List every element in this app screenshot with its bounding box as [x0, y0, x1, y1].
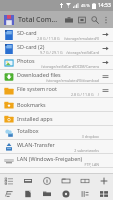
staticText: /storage/extSdCard: [66, 50, 99, 55]
button[interactable]: Add: [94, 174, 113, 187]
button[interactable]: SD-card: [0, 28, 113, 42]
staticText: 9.7 G / 29.1 G: [40, 50, 63, 55]
button[interactable]: Installed apps: [0, 112, 113, 126]
staticText: SD-card: [17, 29, 37, 36]
button[interactable]: List view: [0, 174, 18, 187]
staticText: /storage/emulated/0/download: [45, 78, 99, 83]
button[interactable]: Totalbox: [0, 126, 113, 140]
staticText: WLAN-Transfer: [17, 141, 55, 148]
button[interactable]: Sort: [0, 187, 18, 200]
button[interactable]: New folder: [56, 174, 75, 187]
button[interactable]: SD-card (2): [0, 42, 113, 56]
button[interactable]: WLAN-Transfer: [0, 140, 113, 154]
staticText: LAN (Windows-Freigaben): [17, 155, 83, 162]
staticText: /storage/emulated/0: [63, 36, 99, 41]
staticText: /storage/extSdCard/DCIM/Camera: [41, 64, 99, 69]
button[interactable]: Compare: [75, 174, 94, 187]
button[interactable]: Info: [37, 174, 56, 187]
button[interactable]: Photos: [0, 56, 113, 70]
button[interactable]: Tools: [62, 12, 75, 27]
staticText: 2.8 G / 11.8 G: [71, 92, 94, 97]
button[interactable]: App icon: [3, 14, 15, 26]
button[interactable]: Copy file: [18, 187, 37, 200]
staticText: Photos: [17, 57, 35, 64]
button[interactable]: Move: [37, 187, 56, 200]
button[interactable]: Settings: [56, 187, 75, 200]
button[interactable]: Search: [88, 12, 101, 27]
button[interactable]: More options: [101, 12, 110, 27]
staticText: File system root: [17, 85, 57, 92]
staticText: 14:53: [98, 2, 111, 9]
button[interactable]: Split: [94, 187, 113, 200]
staticText: Downloaded files: [17, 71, 61, 78]
button[interactable]: Downloaded files: [0, 70, 113, 84]
staticText: 3 dropbox: [81, 134, 99, 139]
button[interactable]: File system root: [0, 84, 113, 98]
button[interactable]: Bookmarks: [0, 98, 113, 112]
staticText: 2 subnetworks: [74, 148, 99, 153]
staticText: SD-card (2): [17, 43, 45, 50]
staticText: FTP, LAN: [84, 162, 99, 167]
button[interactable]: Rename: [18, 174, 37, 187]
staticText: Totalbox: [17, 127, 39, 134]
staticText: Installed apps: [17, 115, 53, 122]
staticText: Bookmarks: [17, 101, 46, 108]
staticText: 2.8 G / 11.8 G: [37, 36, 60, 41]
staticText: /: [97, 92, 99, 97]
staticText: 45 %: [81, 3, 90, 8]
button[interactable]: LAN (Windows-Freigaben): [0, 154, 113, 168]
button[interactable]: Window: [75, 12, 88, 27]
button[interactable]: Select: [75, 187, 94, 200]
staticText: Total Com...: [18, 15, 62, 25]
